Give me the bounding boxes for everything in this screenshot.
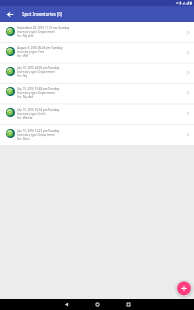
staticText: For: Wifi xyxy=(17,54,29,58)
staticText: For: My dad xyxy=(17,95,33,99)
staticText: For: Boss xyxy=(17,137,30,141)
button[interactable]: July 19, 2016 12:23 pm Tuesday xyxy=(0,124,194,145)
button[interactable]: Recent apps xyxy=(123,299,134,310)
staticText: July 19, 2016 12:23 pm Tuesday xyxy=(17,129,60,133)
staticText: September 28, 2016 11:37 am Tuesday xyxy=(17,26,70,30)
staticText: July 19, 2016 10:34 pm Tuesday xyxy=(17,108,60,112)
staticText: August 9, 2016 06:45 pm Tuesday xyxy=(17,46,63,50)
staticText: Inventory type: Department xyxy=(17,91,55,95)
staticText: For: My wife xyxy=(17,34,34,38)
staticText: July 19, 2016 10:48 pm Tuesday xyxy=(17,87,60,91)
staticText: Inventory type: Free xyxy=(17,50,45,54)
staticText: For: Raj xyxy=(17,74,28,78)
button[interactable]: July 19, 2016 10:34 pm Tuesday xyxy=(0,103,194,124)
button[interactable]: Navigate up xyxy=(0,6,20,22)
staticText: Spot Inventories (6) xyxy=(22,11,63,17)
staticText: Inventory type: Department xyxy=(17,70,55,74)
button[interactable]: July 19, 2016 10:48 pm Tuesday xyxy=(0,82,194,103)
button[interactable]: Add spot inventory xyxy=(175,279,193,297)
button[interactable]: Back xyxy=(61,299,72,310)
button[interactable]: August 9, 2016 06:45 pm Tuesday xyxy=(0,42,194,62)
staticText: For: Wanda xyxy=(17,116,33,120)
button[interactable]: September 28, 2016 11:37 am Tuesday xyxy=(0,22,194,42)
staticText: Inventory type: Department xyxy=(17,133,55,137)
staticText: July 19, 2016 04:05 pm Tuesday xyxy=(17,66,60,70)
staticText: Inventory type: Inichi xyxy=(17,112,46,116)
button[interactable]: Home xyxy=(92,299,103,310)
staticText: Inventory type: Department xyxy=(17,30,55,34)
button[interactable]: July 19, 2016 04:05 pm Tuesday xyxy=(0,62,194,82)
